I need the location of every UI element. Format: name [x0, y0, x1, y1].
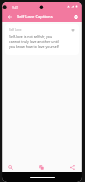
button[interactable]: Search — [5, 162, 16, 172]
button[interactable]: Copy — [36, 162, 47, 172]
staticText: Self Love Captions — [17, 14, 53, 20]
staticText: Self Love — [9, 28, 22, 32]
button[interactable]: Save — [70, 12, 82, 22]
button[interactable]: Share — [67, 162, 78, 172]
staticText: 9:41 — [12, 6, 19, 10]
button[interactable]: Back — [2, 12, 17, 22]
staticText: Self-love is not selfish; you cannot tru… — [9, 34, 61, 49]
button[interactable]: Self Love — [5, 24, 79, 55]
other: Favorite — [71, 28, 75, 32]
